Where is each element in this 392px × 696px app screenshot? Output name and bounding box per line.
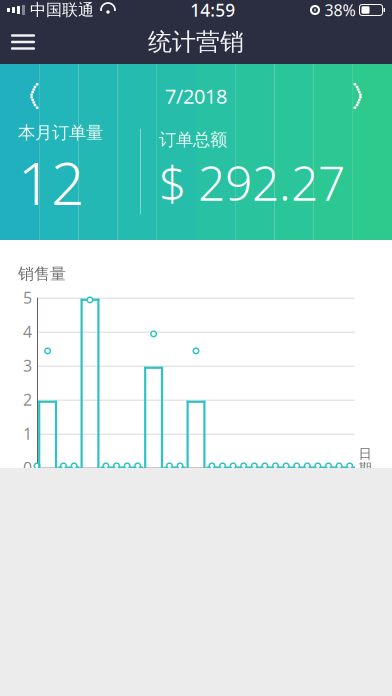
staticText: $ 292.27 <box>159 150 345 214</box>
staticText: 0 <box>23 457 32 478</box>
button[interactable]: Previous month <box>8 76 56 116</box>
staticText: 订单总额 <box>159 129 227 150</box>
button[interactable]: Next month <box>336 76 384 116</box>
staticText: 3 <box>23 355 32 376</box>
staticText: 中国联通 <box>30 0 94 20</box>
staticText: 12 <box>18 143 84 221</box>
staticText: 本月订单量 <box>18 122 103 143</box>
staticText: 38% <box>324 0 355 21</box>
staticText: 14:59 <box>190 0 235 21</box>
staticText: 5 <box>23 287 32 308</box>
staticText: 销售量 <box>18 264 66 284</box>
staticText: 期 <box>358 460 371 476</box>
staticText: 4 <box>23 321 32 342</box>
button[interactable]: Menu <box>0 20 46 64</box>
staticText: 1 <box>23 423 32 444</box>
staticText: 日 <box>358 446 371 462</box>
staticText: 统计营销 <box>148 27 244 57</box>
staticText: 2 <box>23 389 32 410</box>
staticText: 7/2018 <box>165 83 227 109</box>
